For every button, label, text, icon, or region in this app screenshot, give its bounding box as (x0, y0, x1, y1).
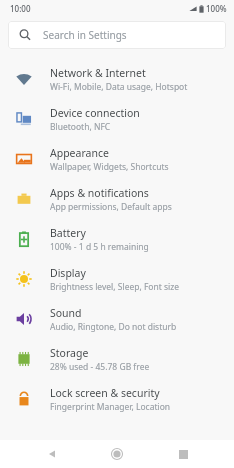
button[interactable]: Back (38, 440, 66, 468)
staticText: 100% (206, 3, 227, 14)
staticText: Brightness level, Sleep, Font size (50, 281, 180, 293)
staticText: Display (50, 266, 86, 280)
button[interactable]: Lock screen & security (0, 379, 234, 419)
staticText: App permissions, Default apps (50, 201, 172, 213)
button[interactable]: Network & Internet (0, 59, 234, 99)
staticText: Appearance (50, 146, 109, 160)
staticText: 100% - 1 d 5 h remaining (50, 241, 149, 253)
staticText: Network & Internet (50, 66, 146, 80)
staticText: Wallpaper, Widgets, Shortcuts (50, 161, 169, 173)
staticText: 10:00 (10, 3, 31, 14)
staticText: Battery (50, 226, 86, 240)
staticText: Wi-Fi, Mobile, Data usage, Hotspot (50, 81, 188, 93)
staticText: Storage (50, 346, 89, 360)
button[interactable]: Appearance (0, 139, 234, 179)
button[interactable]: Apps & notifications (0, 179, 234, 219)
staticText: Apps & notifications (50, 186, 149, 200)
staticText: Audio, Ringtone, Do not disturb (50, 321, 177, 333)
staticText: Lock screen & security (50, 386, 160, 400)
staticText: Bluetooth, NFC (50, 121, 111, 133)
button[interactable]: Home (103, 440, 131, 468)
staticText: Fingerprint Manager, Location (50, 401, 171, 413)
button[interactable]: Display (0, 259, 234, 299)
staticText: 28% used - 45.78 GB free (50, 361, 150, 373)
button[interactable]: Search in Settings (8, 21, 226, 49)
button[interactable]: Storage (0, 339, 234, 379)
button[interactable]: Device connection (0, 99, 234, 139)
staticText: Search in Settings (43, 28, 127, 42)
button[interactable]: Battery (0, 219, 234, 259)
staticText: Sound (50, 306, 82, 320)
button[interactable]: Recent apps (169, 440, 197, 468)
staticText: Device connection (50, 106, 140, 120)
button[interactable]: Sound (0, 299, 234, 339)
